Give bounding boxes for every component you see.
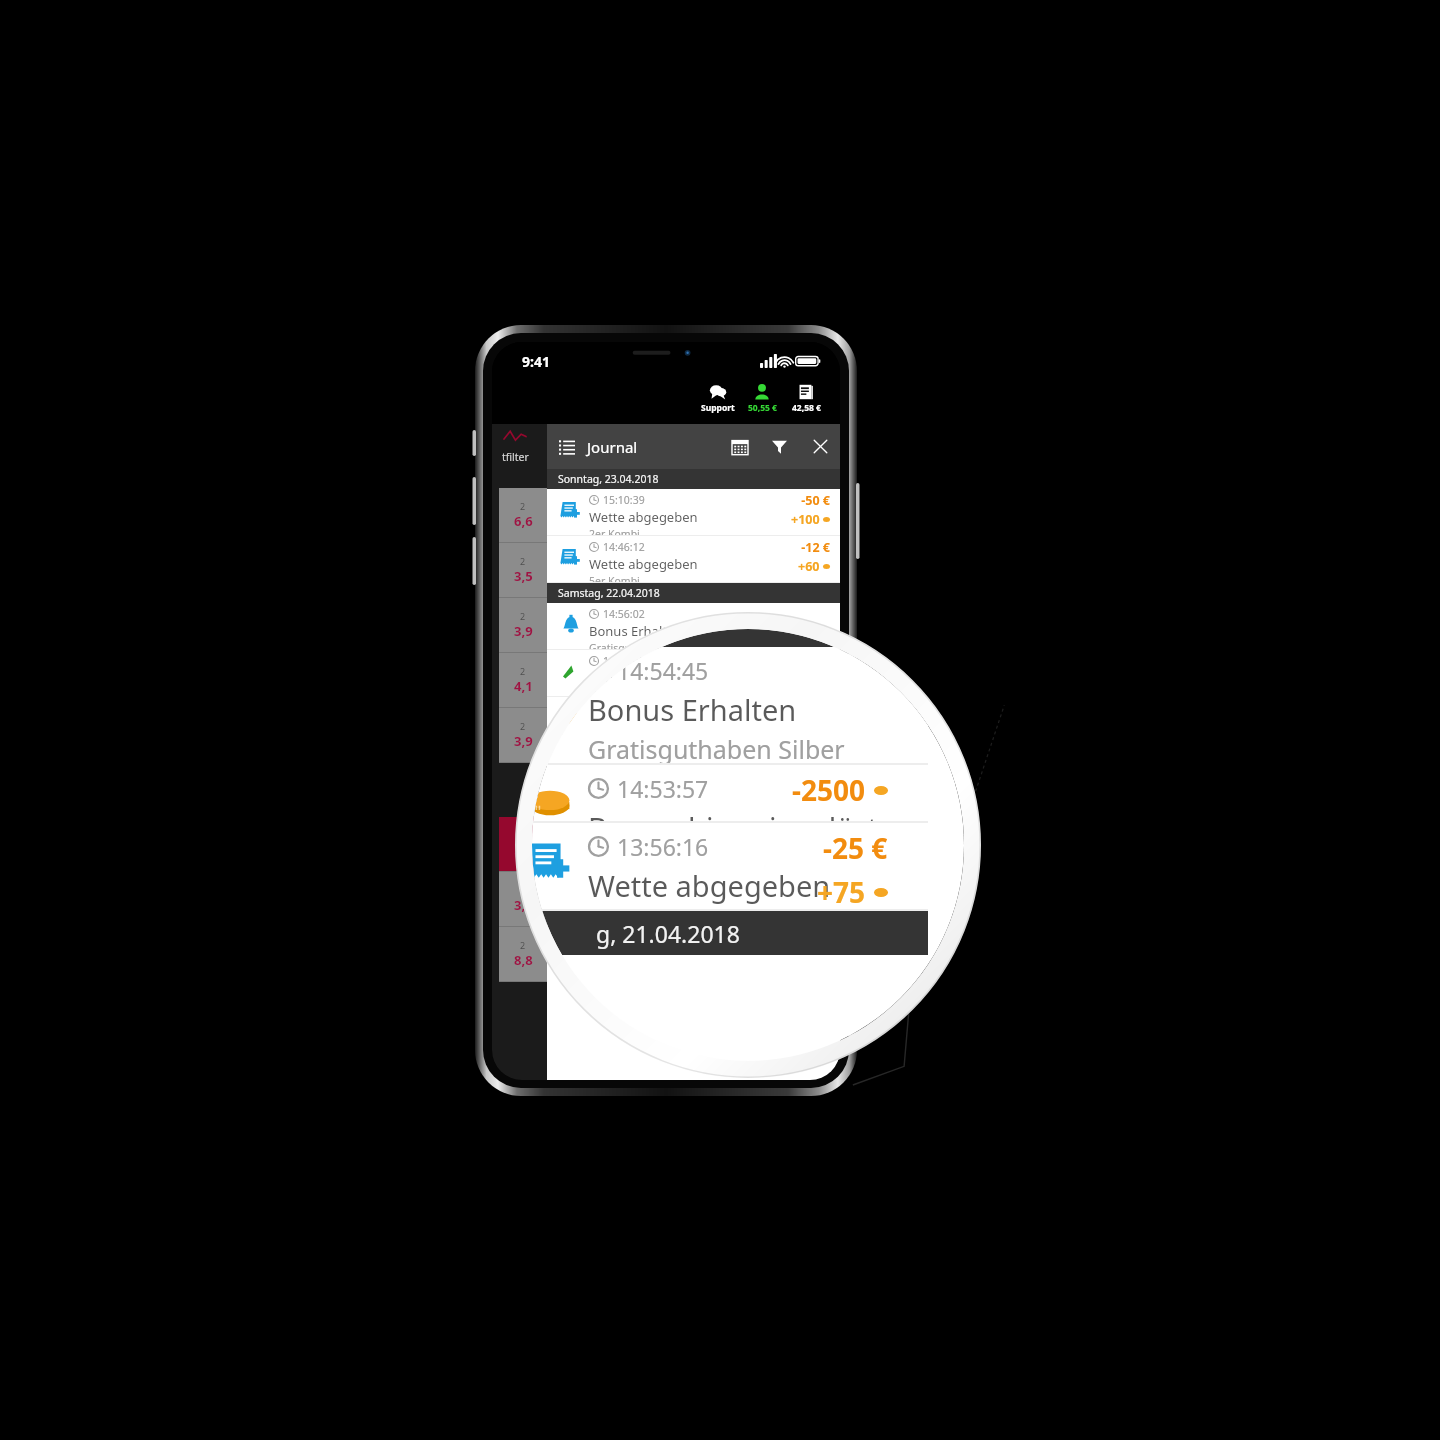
staticText: +120 <box>791 871 820 888</box>
button[interactable]: 2 <box>499 488 547 542</box>
staticText: Bonus Erhalten <box>588 690 797 729</box>
staticText: Wette abgegeben <box>589 754 698 772</box>
staticText: +100 <box>791 511 820 528</box>
staticText: 4,1 <box>514 677 533 695</box>
staticText: +100 € <box>790 899 830 916</box>
staticText: 4er Kombi <box>589 887 640 900</box>
staticText: .2018 <box>616 629 675 641</box>
staticText: 42,58 € <box>792 402 821 414</box>
button[interactable]: 14:53:57 <box>547 697 840 735</box>
staticText: 13:56:16 <box>603 739 645 753</box>
button[interactable]: Close <box>813 439 828 454</box>
button[interactable]: 13:56:16 <box>547 735 840 782</box>
staticText: 9:41 <box>522 352 550 371</box>
staticText: -25 € <box>823 829 888 867</box>
staticText: 2 <box>520 939 526 951</box>
button[interactable]: 50,55 € <box>740 380 784 424</box>
staticText: 3,5 <box>514 841 533 859</box>
staticText: 2 <box>520 610 526 622</box>
staticText: 50,55 € <box>748 402 777 414</box>
staticText: g, 21.04.2018 <box>596 918 740 949</box>
staticText: Wette abgegeben <box>589 555 698 573</box>
button[interactable]: 2 <box>499 543 547 597</box>
staticText: Journal <box>587 437 732 457</box>
staticText: Wette abgegeben <box>589 801 698 819</box>
staticText: 20:11:39 <box>603 853 645 867</box>
staticText: Bonuschips eingelöst <box>589 716 720 734</box>
button[interactable]: 20:11:39 <box>547 849 840 896</box>
staticText: 17:19:45 <box>603 900 645 914</box>
staticText: Gratisguthaben Silber <box>588 732 845 766</box>
button[interactable]: 14:56:02 <box>547 603 840 650</box>
staticText: 2 <box>520 720 526 732</box>
staticText: 3,9 <box>514 622 533 640</box>
staticText: 15:10:39 <box>603 493 645 507</box>
staticText: Wette abgegeben <box>589 868 698 886</box>
staticText: 8,8 <box>514 951 533 969</box>
button[interactable]: 2 <box>499 598 547 652</box>
staticText: +60 <box>798 558 820 575</box>
staticText: -30 € <box>801 852 830 869</box>
button[interactable]: 17:19:45 <box>547 896 840 934</box>
staticText: Bonus Erhalten <box>589 669 683 687</box>
staticText: Einzahlung <box>589 915 657 933</box>
button[interactable]: 2 <box>499 872 547 926</box>
staticText: -25 € <box>801 738 830 755</box>
staticText: 3er Kombi <box>589 773 640 786</box>
staticText: 5er Kombi <box>589 574 640 587</box>
staticText: Samstag, 22.04.2018 <box>558 586 660 600</box>
button[interactable]: 42,58 € <box>784 380 828 424</box>
button[interactable]: 2 <box>499 927 547 981</box>
staticText: 14:53:57 <box>603 701 645 715</box>
staticText: 12:02:11 <box>603 786 645 800</box>
staticText: 14:53:57 <box>617 773 709 804</box>
staticText: 3,9 <box>514 732 533 750</box>
staticText: 2 <box>520 555 526 567</box>
staticText: 14:56:02 <box>603 607 645 621</box>
staticText: 6,6 <box>514 512 533 530</box>
staticText: +75 <box>817 873 866 911</box>
staticText: -50 € <box>801 492 830 509</box>
staticText: +75 <box>798 757 820 774</box>
staticText: 2 <box>520 884 526 896</box>
staticText: Support <box>701 402 735 414</box>
staticText: Freitag, 21.04.2018 <box>558 832 652 846</box>
staticText: 2er Kombi <box>589 527 640 540</box>
staticText: Wette abgegeben <box>589 508 698 526</box>
button[interactable]: 14:54:45 <box>547 650 840 697</box>
staticText: Gratisguthaben Silber <box>589 688 697 701</box>
staticText: 14:46:12 <box>603 540 645 554</box>
staticText: 3,5 <box>514 896 533 914</box>
button[interactable]: Menu <box>559 439 575 455</box>
button[interactable]: 12:02:11 <box>547 782 840 829</box>
staticText: -18 € <box>801 785 830 802</box>
button[interactable]: 14:46:12 <box>547 536 840 583</box>
staticText: 13:56:16 <box>617 831 709 862</box>
staticText: 2 <box>520 665 526 677</box>
staticText: 3er Kombi <box>588 908 710 919</box>
button[interactable]: Filter <box>772 439 787 454</box>
staticText: -2500 <box>792 771 866 809</box>
staticText: 2er Kombi <box>589 820 640 833</box>
staticText: Wette abgegeben <box>588 866 831 905</box>
staticText: tfilter <box>502 450 529 464</box>
button[interactable]: 2 <box>499 817 547 871</box>
button[interactable]: Support <box>696 380 740 424</box>
staticText: 14:54:45 <box>603 654 645 668</box>
staticText: 2 <box>520 500 526 512</box>
staticText: 14:54:45 <box>617 655 709 686</box>
staticText: Bonuschips eingelöst <box>588 808 879 831</box>
button[interactable]: 2 <box>499 653 547 707</box>
button[interactable]: 15:10:39 <box>547 489 840 536</box>
button[interactable]: 2 <box>499 708 547 762</box>
staticText: -12 € <box>801 539 830 556</box>
button[interactable]: Calendar <box>732 439 748 455</box>
staticText: 3,5 <box>514 567 533 585</box>
staticText: Bonus Erhalten <box>589 622 683 640</box>
staticText: Gratisguthaben Gold <box>589 641 693 654</box>
staticText: Sonntag, 23.04.2018 <box>558 472 659 486</box>
